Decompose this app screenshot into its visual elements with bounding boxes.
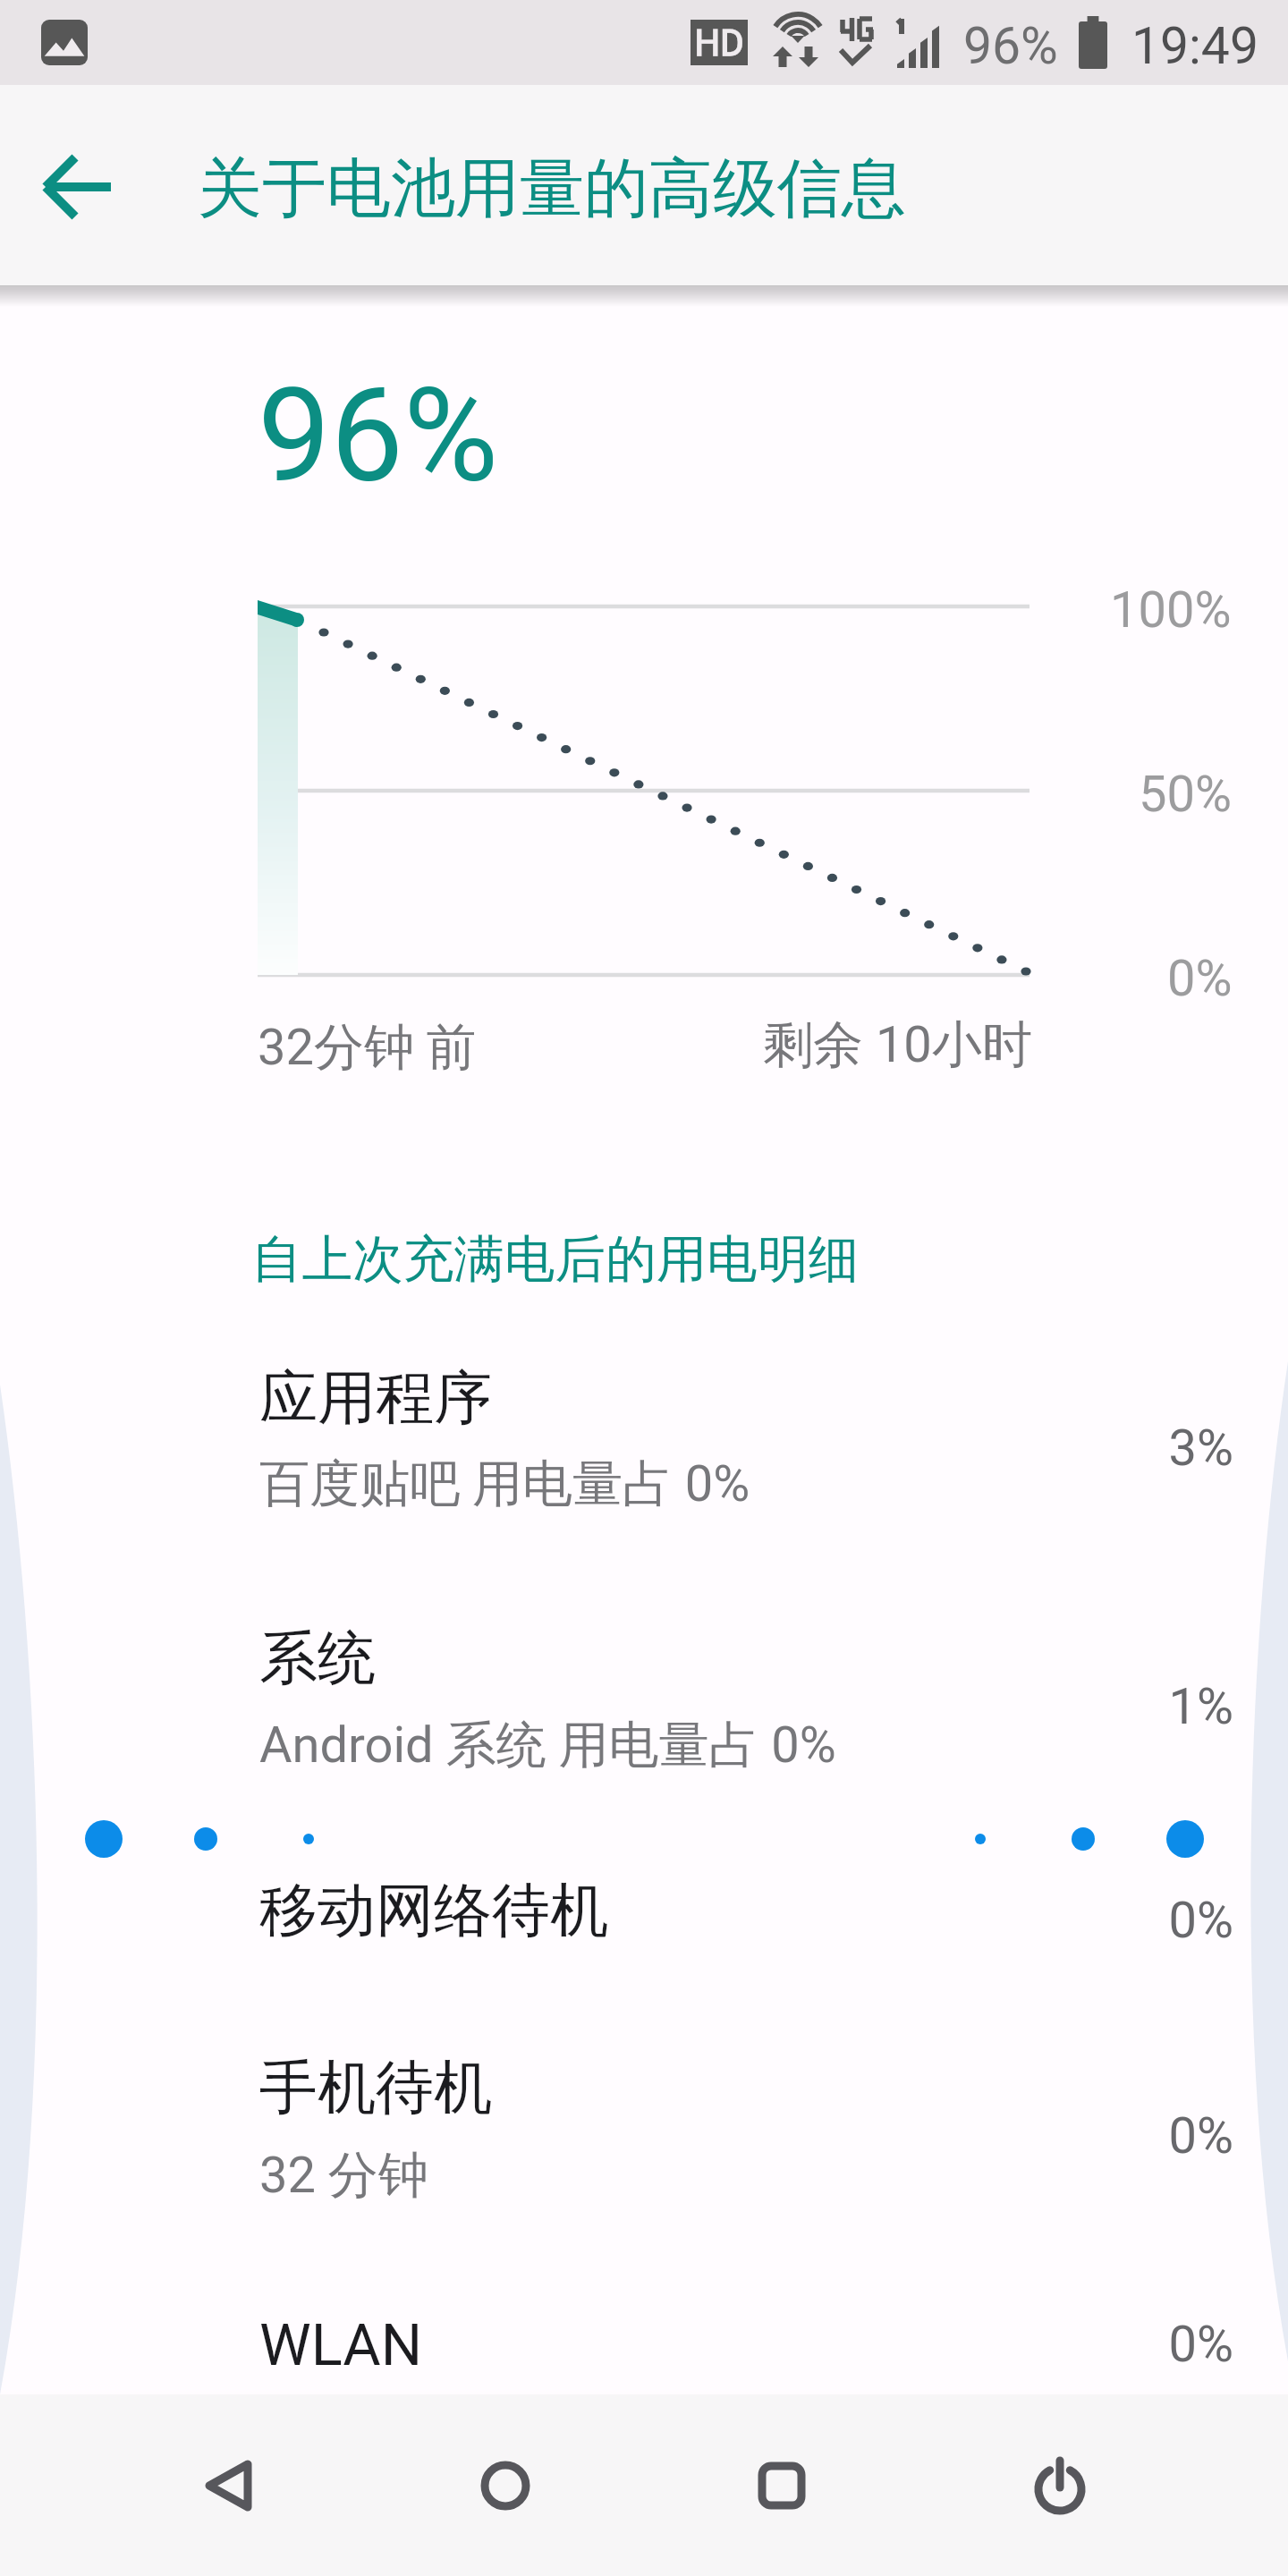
button[interactable]: 系统: [0, 1586, 1288, 1801]
staticText: 应用程序: [259, 1361, 492, 1435]
staticText: 100%: [1110, 580, 1232, 640]
staticText: 3%: [0, 1419, 1233, 1478]
staticText: 手机待机: [259, 2051, 492, 2124]
staticText: 移动网络待机: [259, 1874, 608, 1947]
button[interactable]: Back: [174, 2437, 282, 2545]
staticText: 50%: [1139, 765, 1232, 824]
staticText: 0%: [0, 1891, 1233, 1950]
button[interactable]: Back: [25, 133, 132, 241]
button[interactable]: 手机待机: [0, 2015, 1288, 2230]
button[interactable]: Home: [452, 2437, 559, 2545]
staticText: 剩余 10小时: [763, 1013, 1032, 1077]
staticText: 0%: [0, 2315, 1233, 2374]
staticText: 0%: [1167, 949, 1233, 1008]
staticText: 96%: [258, 360, 499, 512]
button[interactable]: Recent apps: [728, 2437, 835, 2545]
staticText: HD: [691, 22, 748, 64]
button[interactable]: 移动网络待机: [0, 1838, 1288, 1972]
staticText: 19:49: [1131, 16, 1258, 76]
staticText: 32 分钟: [259, 2144, 428, 2207]
staticText: 32分钟 前: [258, 1016, 477, 1080]
staticText: 1%: [0, 1677, 1233, 1736]
staticText: 关于电池用量的高级信息: [198, 148, 906, 230]
staticText: 自上次充满电后的用电明细: [251, 1228, 860, 1292]
staticText: 系统: [259, 1622, 376, 1695]
button[interactable]: Power: [1006, 2437, 1114, 2545]
button[interactable]: 应用程序: [0, 1326, 1288, 1540]
staticText: 百度贴吧 用电量占 0%: [259, 1453, 750, 1516]
staticText: Android 系统 用电量占 0%: [259, 1714, 836, 1777]
button[interactable]: WLAN: [0, 2275, 1288, 2410]
staticText: 96%: [963, 16, 1058, 76]
staticText: WLAN: [259, 2311, 423, 2379]
staticText: 0%: [0, 2106, 1233, 2165]
